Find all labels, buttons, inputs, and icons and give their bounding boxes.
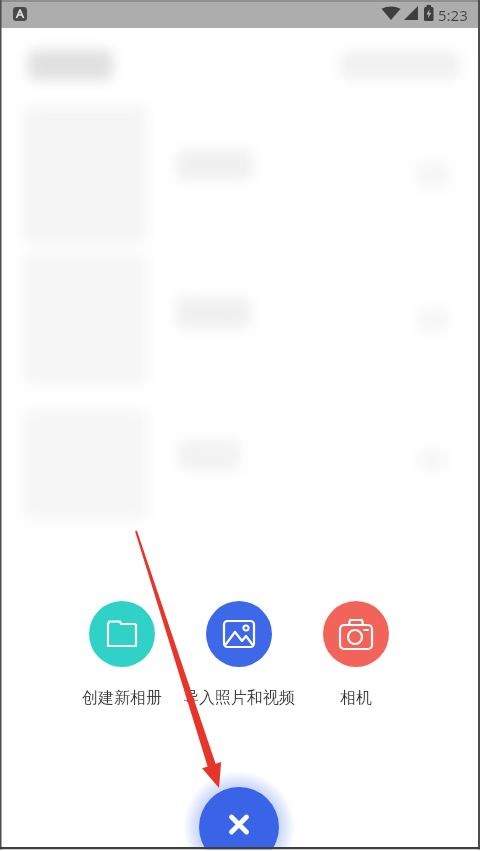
staticText: 创建新相册 — [82, 688, 162, 708]
button[interactable]: 导入照片和视频 — [169, 601, 309, 708]
button[interactable]: 创建新相册 — [52, 601, 192, 708]
staticText: 5:23 — [438, 5, 468, 25]
staticText: 相机 — [340, 688, 372, 708]
button[interactable]: 相机 — [286, 601, 426, 708]
staticText: 导入照片和视频 — [183, 688, 295, 708]
button[interactable] — [199, 787, 279, 851]
